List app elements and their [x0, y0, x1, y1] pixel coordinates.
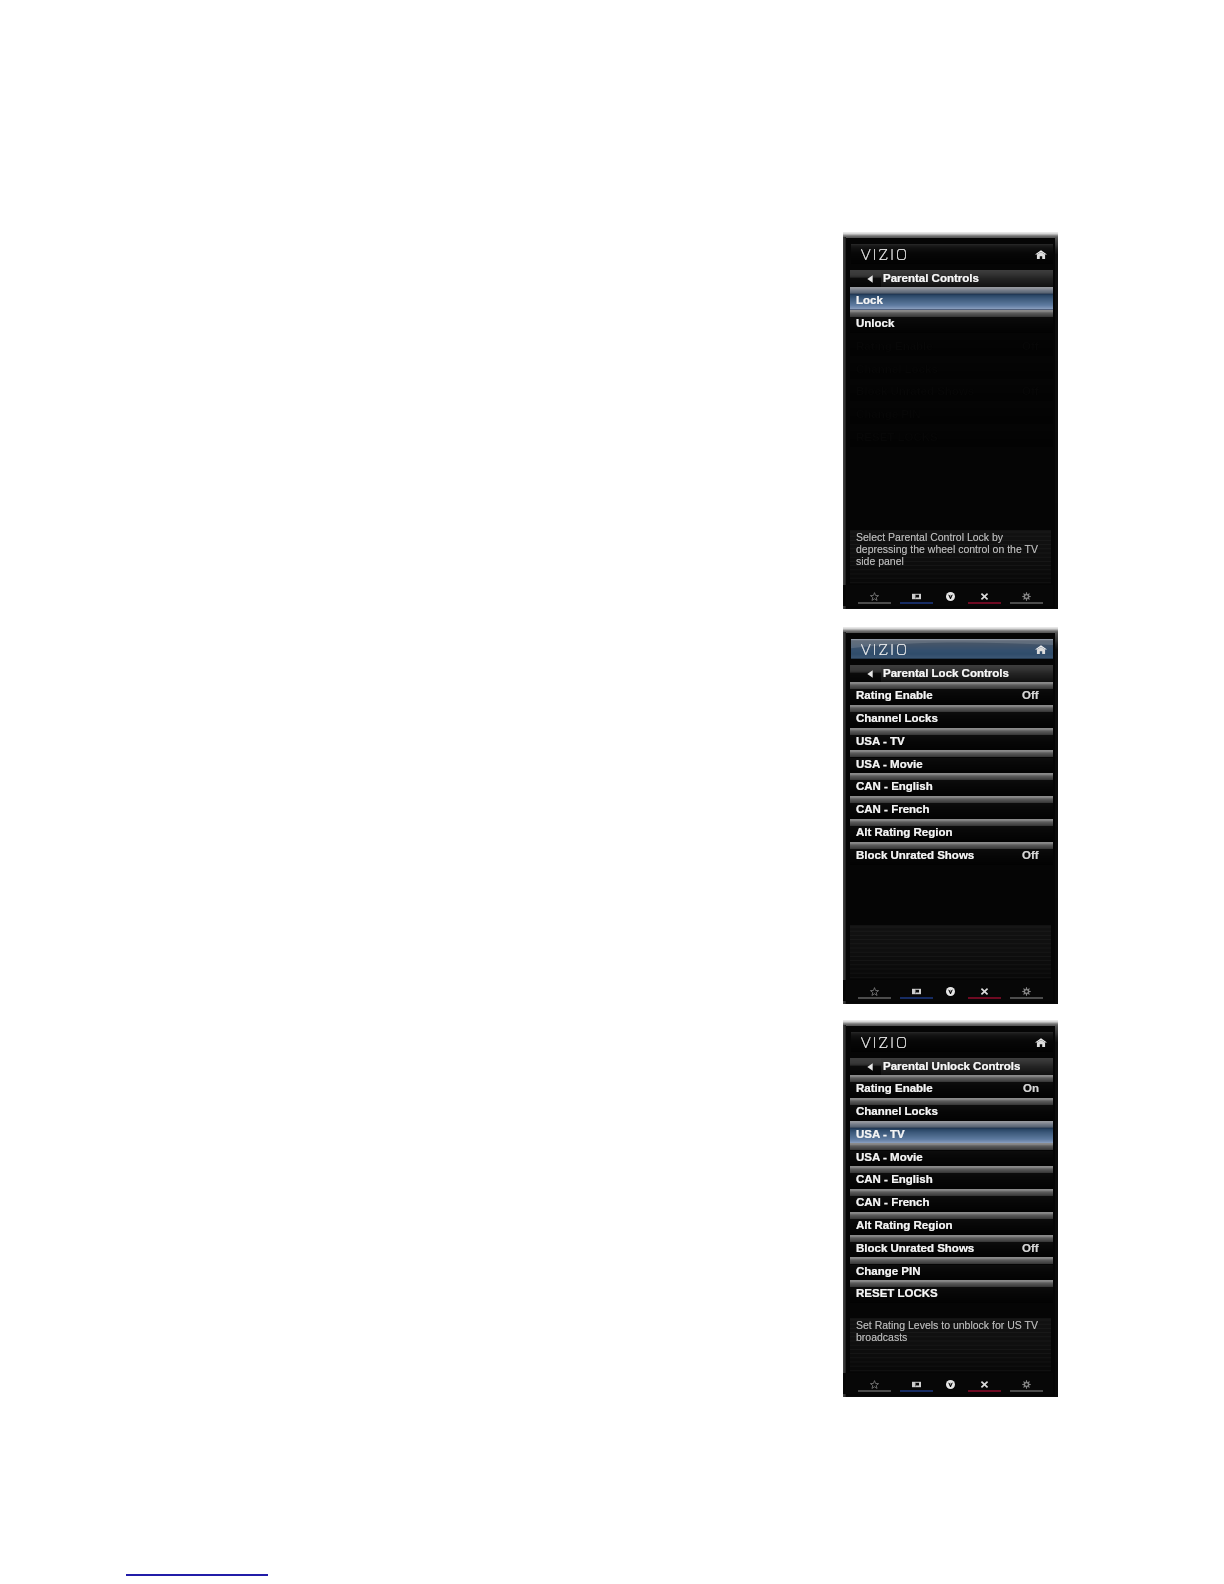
staticText: side panel	[856, 555, 904, 567]
button[interactable]: Settings	[1009, 980, 1043, 1001]
button[interactable]: USA - Movie	[850, 1151, 1053, 1167]
staticText: Select Parental Control Lock by	[856, 531, 1004, 543]
button[interactable]: CAN - French	[850, 803, 1053, 819]
button[interactable]: USA - TV	[850, 1128, 1053, 1144]
button[interactable]: Parental Unlock Controls	[850, 1058, 1053, 1075]
staticText: USA - TV	[856, 1128, 905, 1141]
button[interactable]: Close	[967, 1373, 1001, 1394]
button[interactable]: CAN - French	[850, 1196, 1053, 1212]
button[interactable]: Home	[1035, 644, 1047, 655]
staticText: CAN - French	[856, 1196, 930, 1209]
button[interactable]: RESET LOCKS	[850, 1287, 1053, 1303]
staticText: USA - Movie	[856, 1151, 923, 1164]
staticText: RESET LOCKS	[856, 1287, 938, 1300]
button[interactable]: Vizio home	[933, 1373, 967, 1394]
staticText: CAN - English	[856, 780, 933, 793]
button[interactable]: Picture	[899, 1373, 933, 1394]
staticText: Unlock	[856, 317, 895, 330]
button[interactable]: Favorites	[857, 980, 891, 1001]
staticText: Off	[1022, 849, 1039, 862]
staticText: CAN - French	[856, 803, 930, 816]
button[interactable]: Favorites	[857, 585, 891, 606]
button[interactable]: Home	[1035, 1037, 1047, 1048]
button[interactable]: Lock	[850, 294, 1053, 310]
staticText: Rating Enable	[856, 689, 933, 702]
button[interactable]: Block Unrated Shows	[850, 849, 1053, 865]
staticText: CAN - English	[856, 1173, 933, 1186]
staticText: Parental Unlock Controls	[883, 1060, 1021, 1073]
button[interactable]: Settings	[1009, 1373, 1043, 1394]
staticText: On	[1023, 1082, 1039, 1095]
button[interactable]: Change PIN	[850, 1265, 1053, 1281]
staticText: Rating Enable	[856, 1082, 933, 1095]
button[interactable]: CAN - English	[850, 780, 1053, 796]
staticText: Off	[1022, 689, 1039, 702]
staticText: broadcasts	[856, 1331, 908, 1343]
staticText: Set Rating Levels to unblock for US TV	[856, 1319, 1038, 1331]
button[interactable]: Rating Enable	[850, 1082, 1053, 1098]
button[interactable]: Close	[967, 585, 1001, 606]
staticText: USA - Movie	[856, 758, 923, 771]
staticText: Alt Rating Region	[856, 826, 953, 839]
button[interactable]: Close	[967, 980, 1001, 1001]
staticText: Lock	[856, 294, 883, 307]
button[interactable]: Alt Rating Region	[850, 826, 1053, 842]
staticText: Block Unrated Shows	[856, 849, 975, 862]
staticText: USA - TV	[856, 735, 905, 748]
staticText: Off	[1022, 1242, 1039, 1255]
button[interactable]: VIZIO	[851, 244, 1053, 264]
button[interactable]: VIZIO	[851, 1032, 1053, 1052]
button[interactable]: USA - Movie	[850, 758, 1053, 774]
button[interactable]: CAN - English	[850, 1173, 1053, 1189]
staticText: Alt Rating Region	[856, 1219, 953, 1232]
staticText: Change PIN	[856, 1265, 921, 1278]
button[interactable]: VIZIO	[851, 639, 1053, 659]
staticText: VIZIO	[861, 1033, 910, 1052]
staticText: Channel Locks	[856, 712, 938, 725]
staticText: Channel Locks	[856, 1105, 938, 1118]
button[interactable]: Alt Rating Region	[850, 1219, 1053, 1235]
button[interactable]: Vizio home	[933, 980, 967, 1001]
button[interactable]: USA - TV	[850, 735, 1053, 751]
button[interactable]: Channel Locks	[850, 1105, 1053, 1121]
button[interactable]: Block Unrated Shows	[850, 1242, 1053, 1258]
button[interactable]: Rating Enable	[850, 689, 1053, 705]
staticText: Parental Controls	[883, 272, 979, 285]
button[interactable]: Favorites	[857, 1373, 891, 1394]
button[interactable]: Channel Locks	[850, 712, 1053, 728]
button[interactable]: Picture	[899, 980, 933, 1001]
staticText: VIZIO	[861, 245, 910, 264]
staticText: Parental Lock Controls	[883, 667, 1009, 680]
button[interactable]: Unlock	[850, 317, 1053, 333]
button[interactable]: Settings	[1009, 585, 1043, 606]
button[interactable]: Picture	[899, 585, 933, 606]
staticText: depressing the wheel control on the TV	[856, 543, 1038, 555]
button[interactable]: Vizio home	[933, 585, 967, 606]
button[interactable]: Parental Lock Controls	[850, 665, 1053, 682]
staticText: VIZIO	[861, 640, 910, 659]
button[interactable]: Home	[1035, 249, 1047, 260]
button[interactable]: Parental Controls	[850, 270, 1053, 287]
staticText: Block Unrated Shows	[856, 1242, 975, 1255]
